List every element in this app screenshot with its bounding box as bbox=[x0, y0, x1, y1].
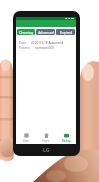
staticText: Expired bbox=[60, 30, 72, 35]
staticText: someone001 bbox=[35, 46, 55, 50]
staticText: Data bbox=[23, 139, 29, 143]
staticText: 2020-03-18 Advanced bbox=[31, 41, 64, 45]
button[interactable]: Backup bbox=[56, 132, 76, 144]
staticText: Cleaning bbox=[19, 30, 33, 35]
staticText: Backup bbox=[62, 139, 71, 143]
button[interactable]: Expired bbox=[56, 29, 75, 35]
staticText: Patient: bbox=[19, 46, 31, 50]
button[interactable]: Advanced bbox=[36, 29, 55, 35]
button[interactable]: Patient: bbox=[19, 46, 73, 50]
staticText: Date: bbox=[19, 41, 27, 45]
staticText: Advanced bbox=[38, 30, 54, 35]
staticText: LG bbox=[43, 147, 50, 154]
staticText: Home bbox=[42, 139, 50, 143]
button[interactable]: Date: bbox=[19, 41, 73, 45]
button[interactable]: Data bbox=[16, 132, 36, 144]
button[interactable]: Home bbox=[36, 132, 56, 144]
button[interactable]: Cleaning bbox=[17, 29, 35, 35]
